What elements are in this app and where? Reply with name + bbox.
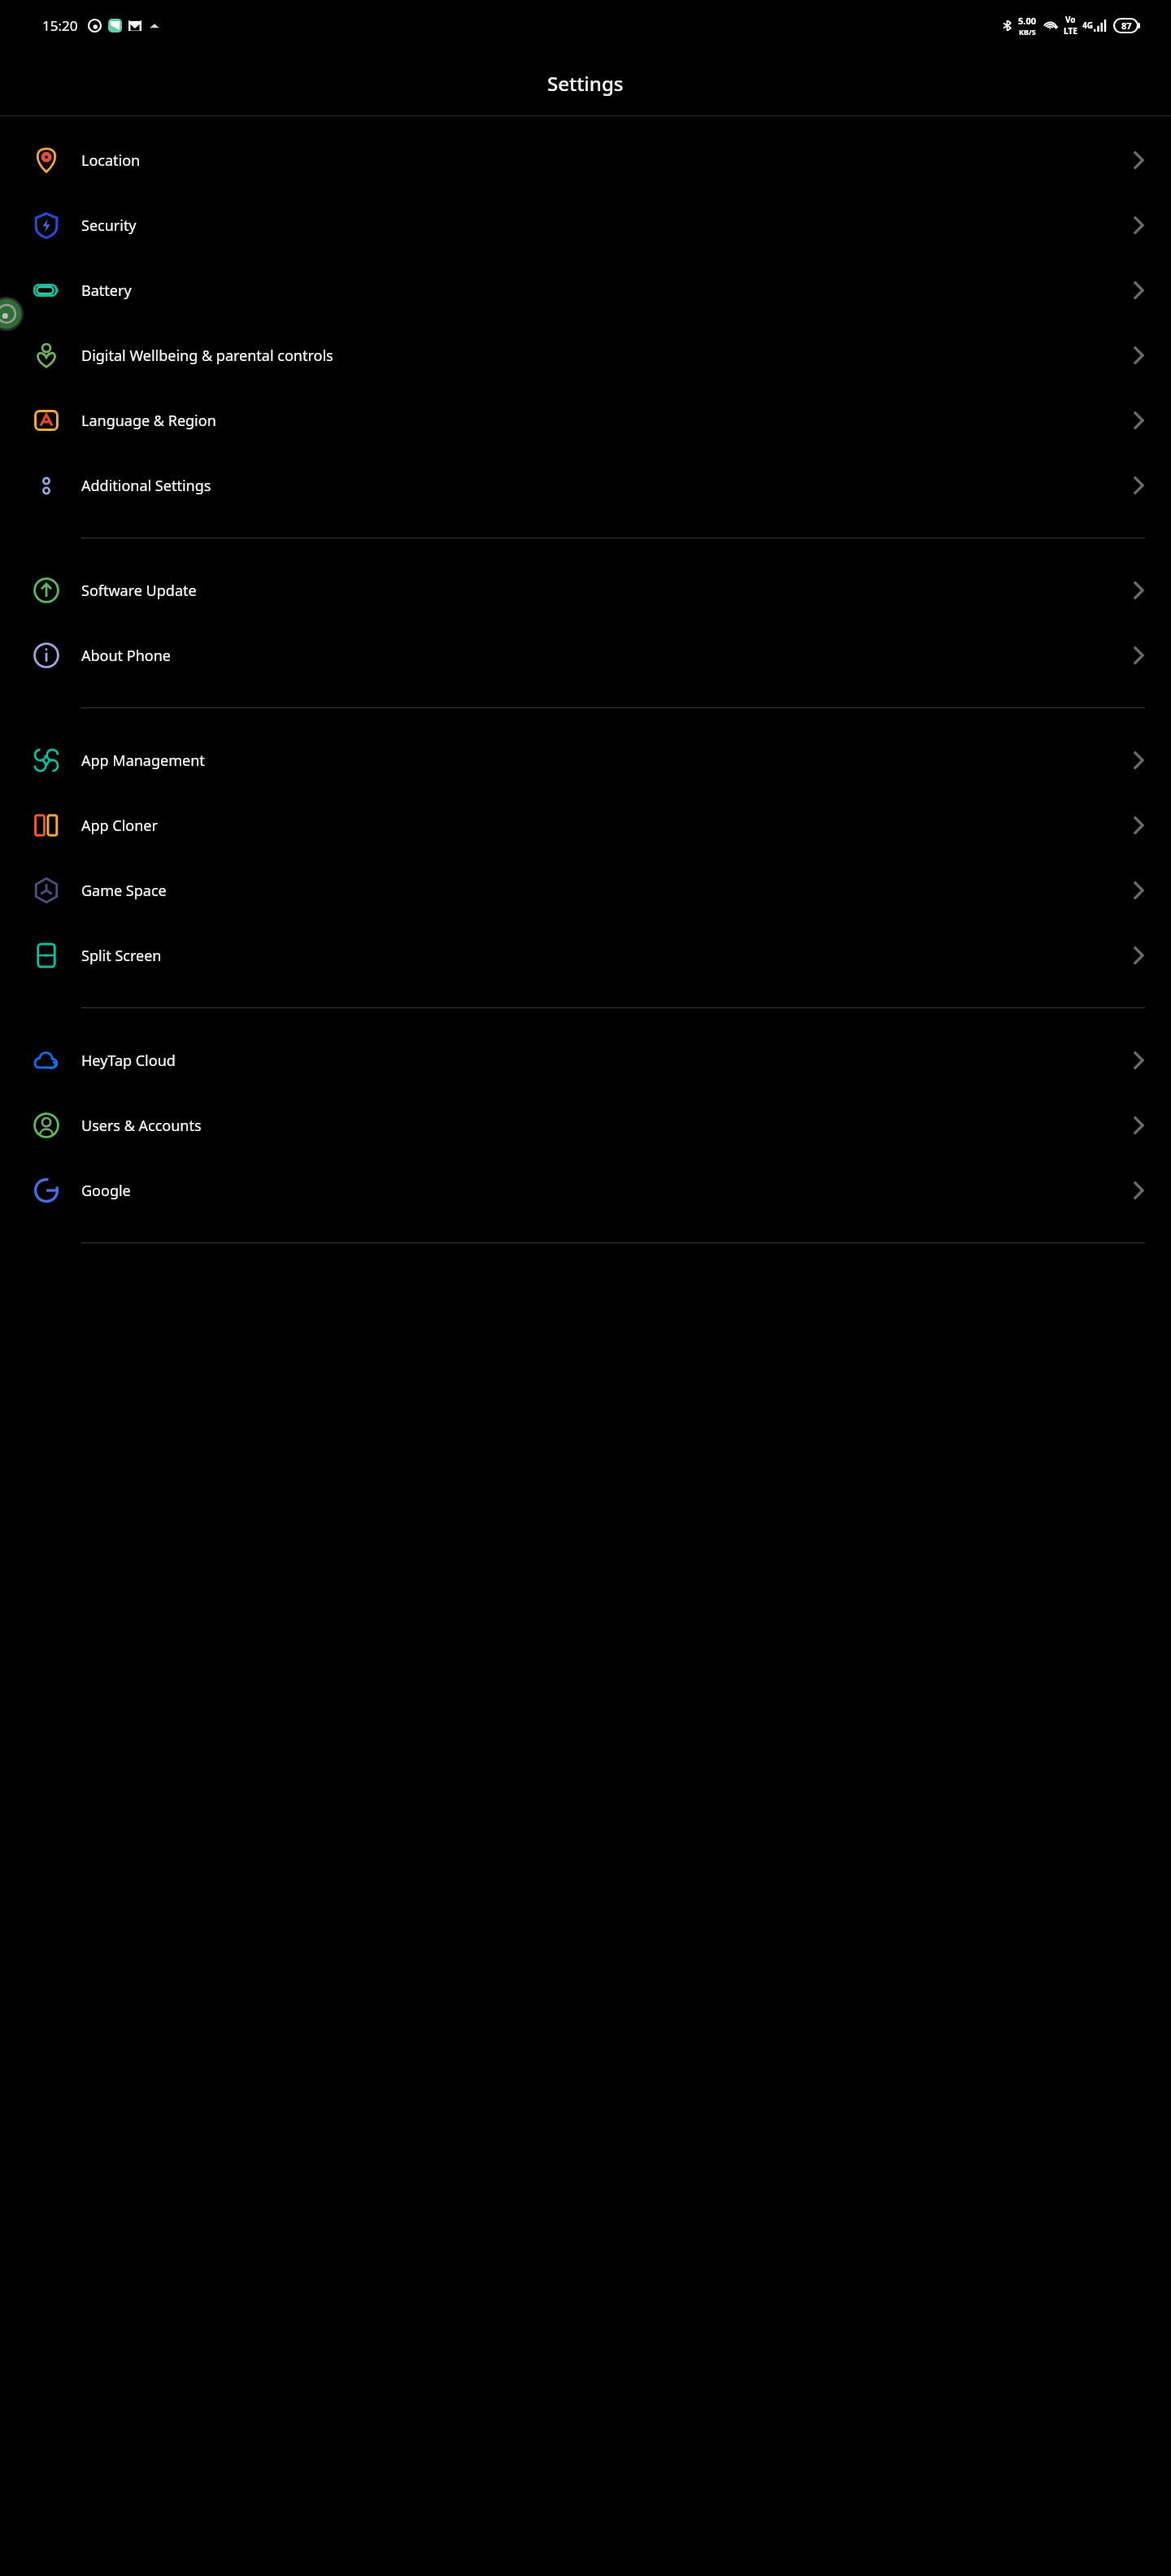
staticText: App Cloner [81,816,1132,836]
button[interactable]: Users & Accounts [0,1093,1171,1158]
staticText: Software Update [81,581,1132,601]
staticText: 87 [1121,20,1132,32]
staticText: Location [81,150,1132,171]
button[interactable]: Split Screen [0,923,1171,988]
button[interactable]: App Cloner [0,793,1171,858]
staticText: Settings [547,70,624,97]
button[interactable]: Digital Wellbeing & parental controls [0,323,1171,388]
button[interactable]: App Management [0,728,1171,793]
staticText: 5.00 [1018,15,1036,27]
staticText: About Phone [81,646,1132,666]
staticText: Language & Region [81,411,1132,431]
button[interactable]: Game Space [0,858,1171,923]
button[interactable]: HeyTap Cloud [0,1028,1171,1093]
staticText: KB/S [1019,27,1036,37]
staticText: Google [81,1181,1132,1201]
staticText: 4G [1082,20,1093,31]
staticText: Split Screen [81,946,1132,966]
staticText: Digital Wellbeing & parental controls [81,346,1132,366]
button[interactable]: Security [0,193,1171,258]
staticText: Users & Accounts [81,1116,1132,1136]
staticText: Game Space [81,881,1132,901]
staticText: Vo [1065,14,1076,25]
button[interactable]: Software Update [0,558,1171,623]
staticText: Security [81,215,1132,236]
staticText: Battery [81,281,1132,301]
staticText: HeyTap Cloud [81,1051,1132,1071]
button[interactable]: Location [0,128,1171,193]
button[interactable]: About Phone [0,623,1171,688]
button[interactable]: Additional Settings [0,453,1171,518]
button[interactable]: WhatsApp bubble [0,297,24,331]
button[interactable]: Language & Region [0,388,1171,453]
button[interactable]: Battery [0,258,1171,323]
staticText: LTE [1064,25,1077,37]
staticText: Additional Settings [81,476,1132,496]
button[interactable]: Google [0,1158,1171,1223]
staticText: App Management [81,751,1132,771]
staticText: 15:20 [42,16,78,35]
